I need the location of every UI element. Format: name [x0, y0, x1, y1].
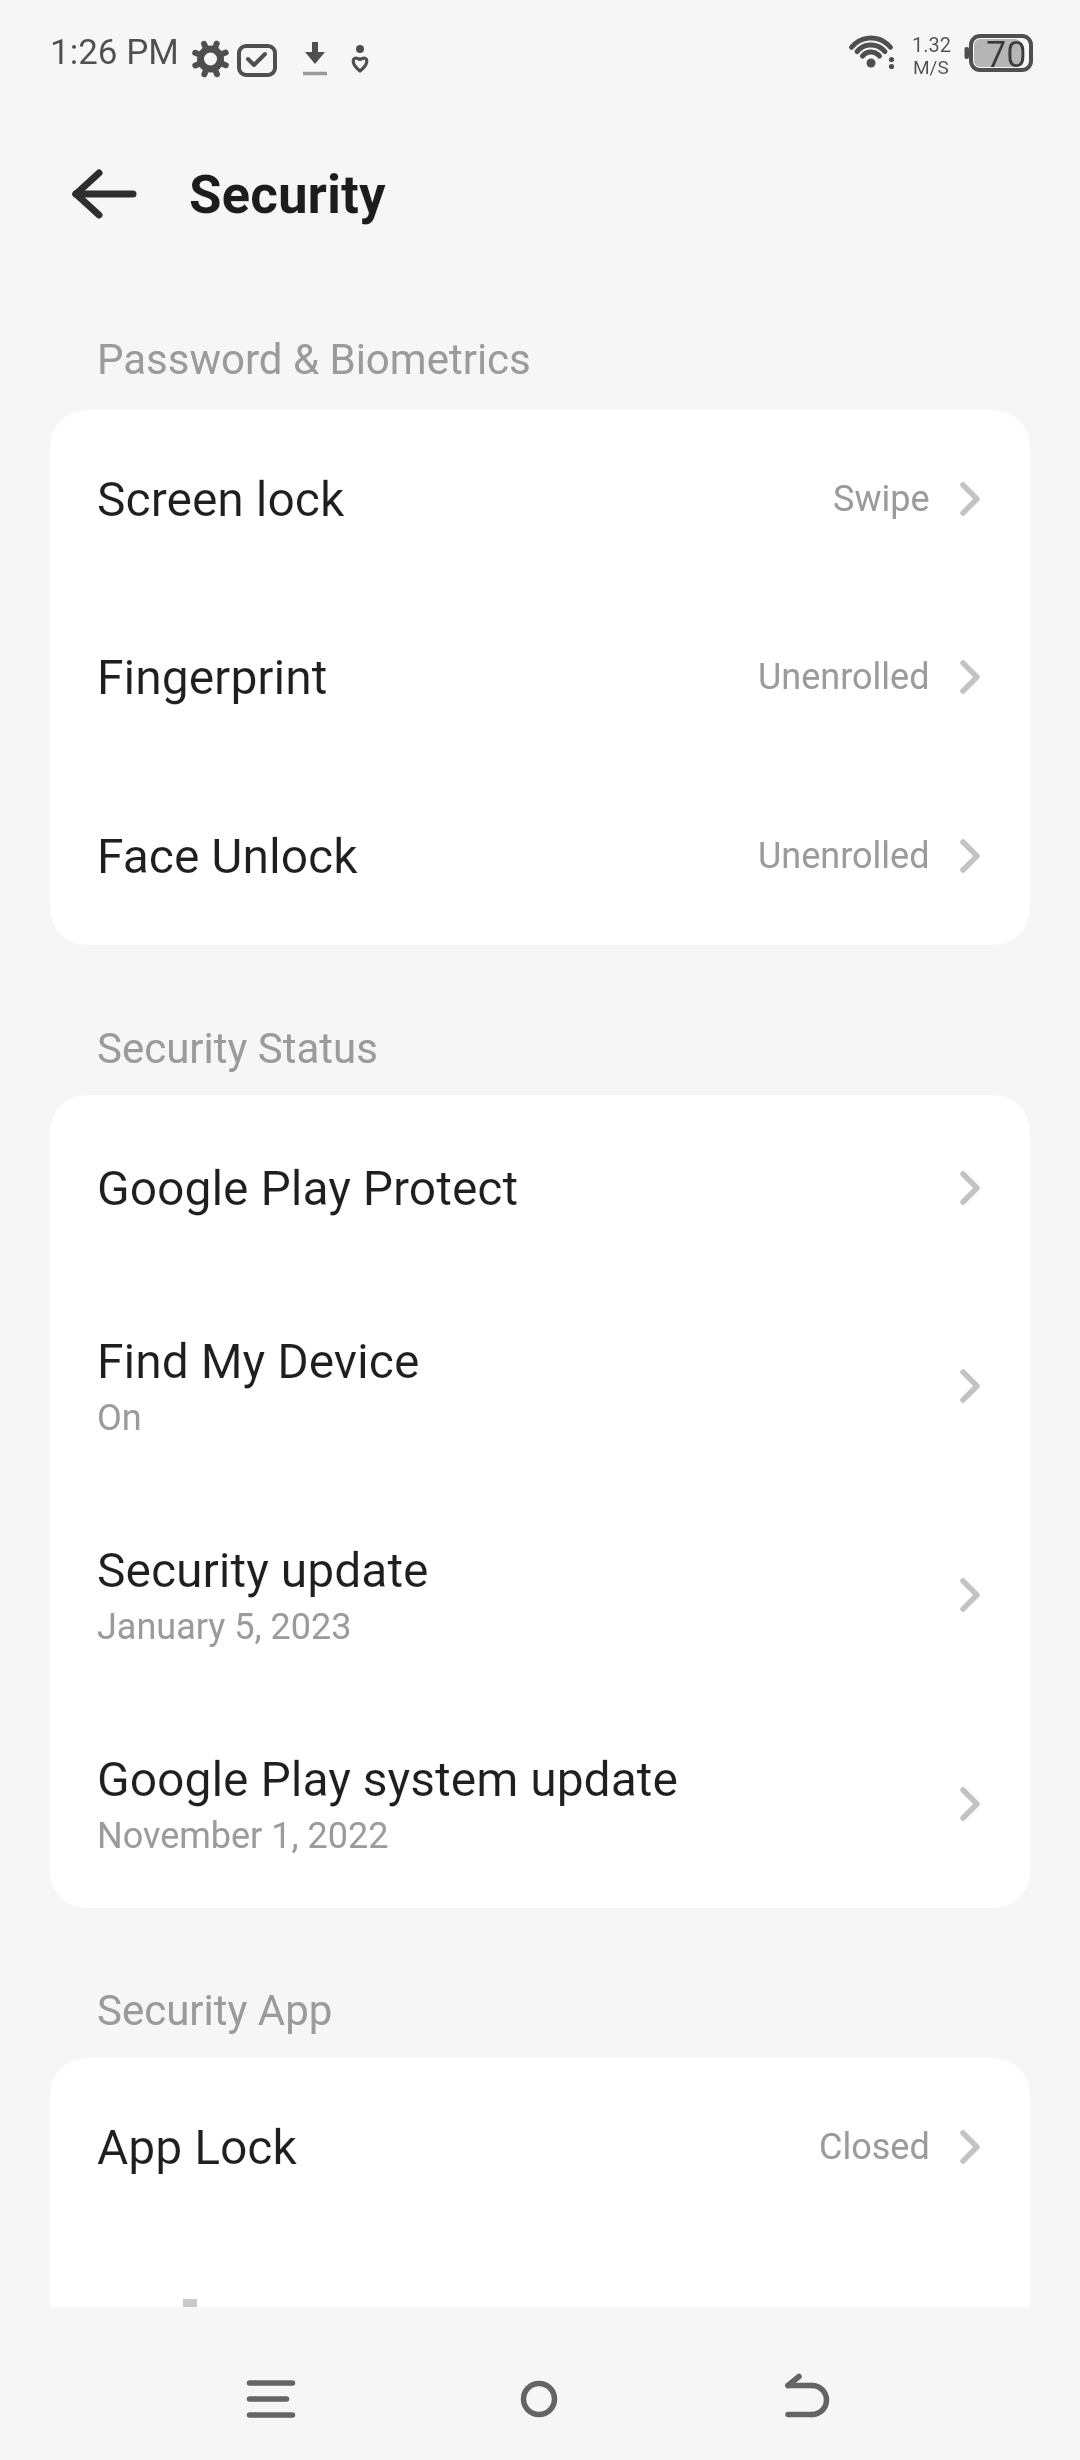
staticText: App Lock [97, 2119, 297, 2175]
button[interactable]: Screen lock [50, 410, 1030, 588]
staticText: Google Play Protect [97, 1160, 519, 1216]
staticText: 1:26 PM [50, 32, 179, 73]
staticText: Unenrolled [758, 835, 930, 877]
button[interactable]: Security update [50, 1490, 1030, 1700]
staticText: January 5, 2023 [97, 1606, 352, 1648]
button[interactable] [748, 2347, 868, 2451]
button[interactable] [211, 2347, 331, 2451]
staticText: 1.32 [912, 33, 951, 56]
staticText: Swipe [833, 478, 930, 520]
staticText: M/S [913, 56, 949, 78]
button[interactable] [58, 148, 150, 240]
button[interactable]: Face Unlock [50, 766, 1030, 945]
staticText: Security [189, 164, 386, 226]
staticText: Face Unlock [97, 828, 358, 884]
button[interactable]: Fingerprint [50, 588, 1030, 766]
button[interactable]: Google Play system update [50, 1700, 1030, 1908]
staticText: Google Play system update [97, 1751, 678, 1807]
button[interactable]: Google Play Protect [50, 1095, 1030, 1281]
staticText: Security App [97, 1986, 333, 2035]
staticText: Closed [819, 2126, 930, 2168]
staticText: Unenrolled [758, 656, 930, 698]
staticText: 70 [986, 34, 1027, 70]
staticText: Security Status [97, 1024, 378, 1073]
button[interactable] [479, 2347, 599, 2451]
staticText: Security update [97, 1542, 429, 1598]
staticText: Fingerprint [97, 649, 328, 705]
button[interactable]: Find My Device [50, 1281, 1030, 1490]
staticText: On [97, 1397, 142, 1439]
staticText: Password & Biometrics [97, 335, 531, 384]
staticText: Screen lock [97, 471, 345, 527]
button[interactable]: App Lock [50, 2058, 1030, 2236]
staticText: Find My Device [97, 1333, 420, 1389]
staticText: November 1, 2022 [97, 1815, 389, 1857]
